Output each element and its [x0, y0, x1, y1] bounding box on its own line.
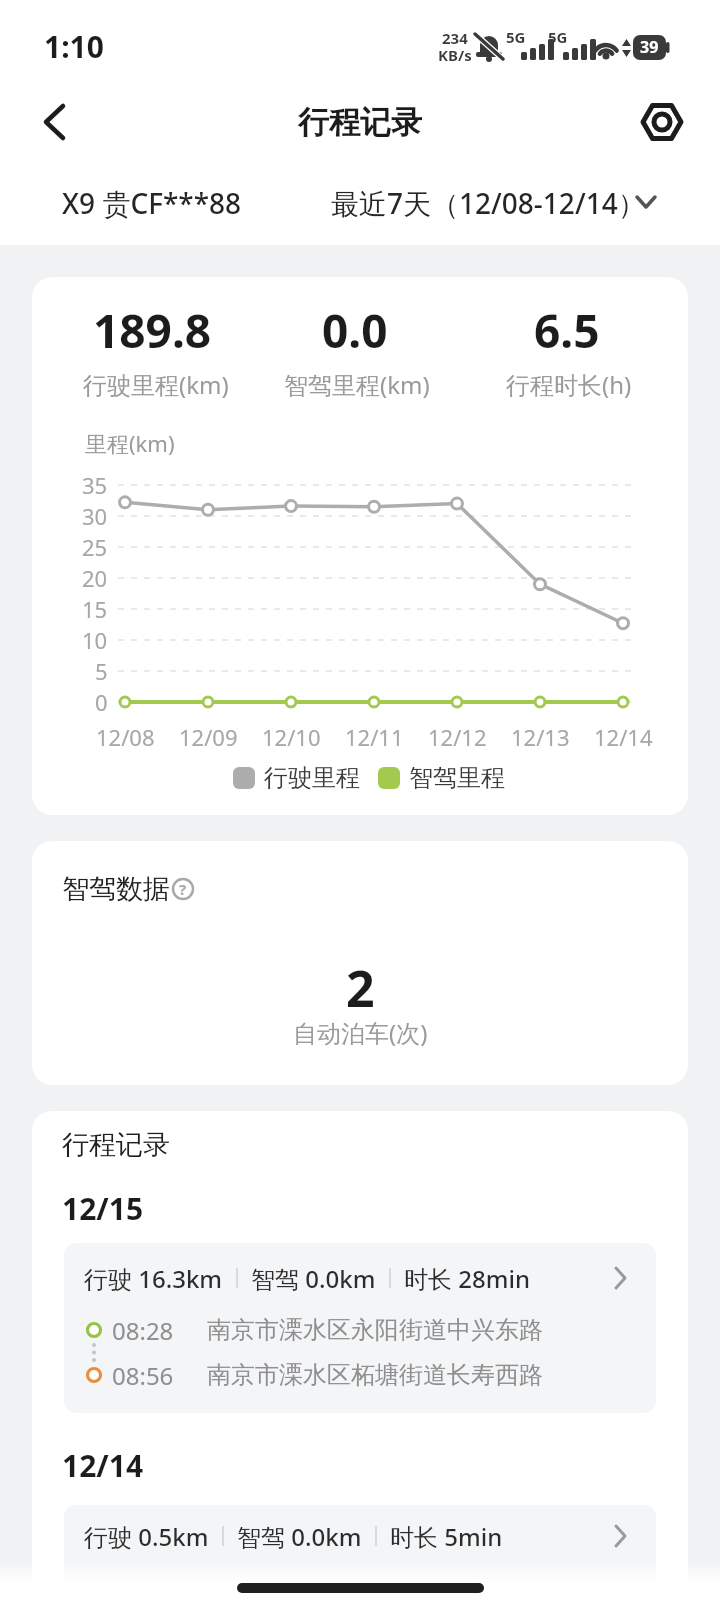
- staticText: KB/s: [438, 45, 472, 65]
- staticText: 5G: [506, 27, 526, 47]
- staticText: 最近7天（12/08-12/14）: [331, 184, 646, 222]
- staticText: 12/14: [594, 722, 653, 752]
- staticText: 行驶 0.5km: [84, 1520, 209, 1553]
- staticText: 25: [82, 532, 108, 562]
- staticText: 12/09: [179, 722, 238, 752]
- staticText: 2: [346, 954, 375, 1014]
- staticText: 12/11: [345, 722, 404, 752]
- staticText: 智驾数据: [62, 872, 170, 906]
- staticText: 35: [82, 470, 108, 500]
- button[interactable]: [636, 96, 688, 148]
- staticText: 12/08: [96, 722, 155, 752]
- staticText: 行程记录: [298, 103, 422, 142]
- staticText: 0.0: [322, 299, 388, 359]
- staticText: 时长 5min: [390, 1520, 503, 1553]
- staticText: 234: [442, 28, 468, 48]
- button[interactable]: 行驶 16.3km: [64, 1243, 656, 1413]
- staticText: 12/10: [262, 722, 321, 752]
- staticText: 0: [95, 687, 108, 717]
- staticText: 行程记录: [62, 1128, 170, 1162]
- staticText: 行驶里程(km): [83, 368, 229, 401]
- staticText: 12/12: [428, 722, 487, 752]
- staticText: ?: [179, 879, 187, 899]
- staticText: 1:10: [44, 26, 104, 67]
- staticText: X9 贵CF***88: [62, 184, 242, 222]
- button[interactable]: 最近7天（12/08-12/14）: [331, 173, 646, 233]
- staticText: 12/14: [62, 1445, 144, 1486]
- staticText: 智驾 0.0km: [251, 1262, 376, 1295]
- staticText: 行驶 16.3km: [84, 1262, 223, 1295]
- button[interactable]: 行驶 0.5km: [64, 1505, 656, 1600]
- staticText: 智驾 0.0km: [237, 1520, 362, 1553]
- staticText: 里程(km): [85, 428, 175, 458]
- button[interactable]: [32, 98, 80, 146]
- staticText: 39: [640, 36, 659, 58]
- staticText: 20: [82, 563, 108, 593]
- button[interactable]: X9 贵CF***88: [62, 173, 242, 233]
- staticText: 行程时长(h): [506, 368, 632, 401]
- staticText: 08:28: [112, 1314, 174, 1347]
- staticText: 6.5: [534, 299, 600, 359]
- staticText: 10: [82, 625, 108, 655]
- staticText: 时长 28min: [404, 1262, 530, 1295]
- staticText: 12/15: [62, 1188, 144, 1229]
- button[interactable]: [172, 878, 194, 900]
- staticText: 30: [82, 501, 108, 531]
- staticText: 5G: [548, 27, 568, 47]
- staticText: 智驾里程: [409, 763, 505, 793]
- staticText: 自动泊车(次): [293, 1016, 428, 1049]
- staticText: 5: [95, 656, 108, 686]
- staticText: 08:56: [112, 1359, 174, 1392]
- staticText: 行驶里程: [264, 763, 360, 793]
- staticText: 南京市溧水区柘塘街道长寿西路: [207, 1360, 543, 1390]
- staticText: 南京市溧水区永阳街道中兴东路: [207, 1315, 543, 1345]
- staticText: 12/13: [511, 722, 570, 752]
- staticText: 189.8: [93, 299, 212, 359]
- button[interactable]: [237, 1583, 484, 1593]
- staticText: 15: [82, 594, 108, 624]
- staticText: 智驾里程(km): [284, 368, 430, 401]
